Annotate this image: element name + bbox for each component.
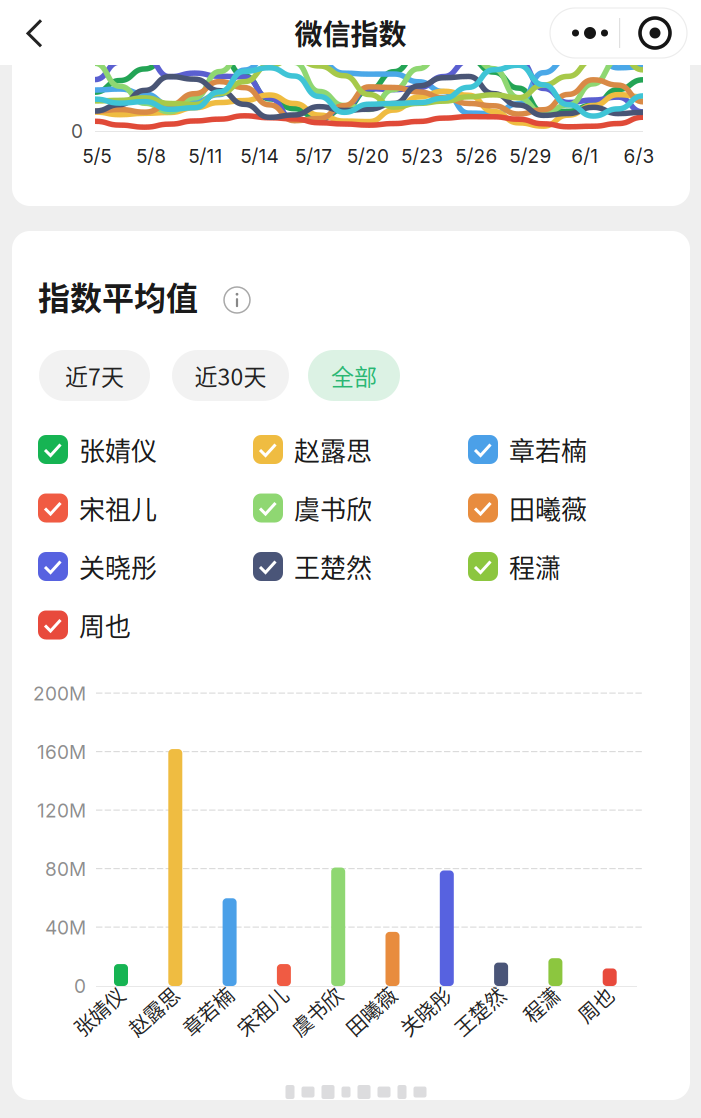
staticText: 周也 <box>584 1011 624 1040</box>
staticText: 5/23 <box>401 144 443 167</box>
button[interactable]: 近30天 <box>172 350 289 401</box>
staticText: 赵露思 <box>129 1011 189 1040</box>
button[interactable]: 全部 <box>308 350 400 401</box>
staticText: 近7天 <box>65 359 124 392</box>
staticText: 周也 <box>79 606 131 644</box>
staticText: 关晓彤 <box>401 1011 461 1040</box>
button[interactable]: 关晓彤 <box>38 552 218 581</box>
staticText: 虞书欣 <box>294 489 372 527</box>
staticText: 王楚然 <box>455 1011 515 1040</box>
staticText: 王楚然 <box>294 548 372 585</box>
staticText: 赵露思 <box>294 431 372 468</box>
staticText: 近30天 <box>194 359 266 392</box>
staticText: 指数平均值 <box>38 273 198 319</box>
staticText: 章若楠 <box>184 1011 244 1040</box>
staticText: 0 <box>74 974 86 997</box>
staticText: 6/3 <box>623 144 654 167</box>
staticText: 田曦薇 <box>509 489 587 527</box>
staticText: 5/17 <box>295 144 332 167</box>
staticText: 5/26 <box>455 144 497 167</box>
staticText: 5/8 <box>136 144 166 167</box>
staticText: 关晓彤 <box>79 548 157 585</box>
staticText: 微信指数 <box>294 12 406 53</box>
staticText: 宋祖儿 <box>79 489 157 527</box>
button[interactable]: Info <box>220 283 254 317</box>
staticText: 6/1 <box>571 144 598 167</box>
staticText: 5/5 <box>82 144 111 167</box>
staticText: 5/20 <box>347 144 389 167</box>
staticText: 160M <box>37 740 86 763</box>
staticText: 200M <box>33 682 86 705</box>
staticText: 张婧仪 <box>75 1011 135 1040</box>
staticText: 程潇 <box>509 548 561 585</box>
staticText: 120M <box>37 799 86 822</box>
staticText: 5/14 <box>241 144 279 167</box>
staticText: 5/29 <box>510 144 552 167</box>
button[interactable]: 宋祖儿 <box>38 493 218 522</box>
staticText: 5/11 <box>188 144 222 167</box>
staticText: 章若楠 <box>509 431 587 468</box>
button[interactable]: 王楚然 <box>253 552 433 581</box>
button[interactable]: 田曦薇 <box>468 493 648 522</box>
staticText: 程潇 <box>529 1011 569 1040</box>
button[interactable]: 章若楠 <box>468 435 648 464</box>
button[interactable]: 虞书欣 <box>253 493 433 522</box>
staticText: 田曦薇 <box>346 1011 406 1040</box>
button[interactable]: More <box>550 8 687 58</box>
button[interactable]: 近7天 <box>39 350 150 401</box>
staticText: 宋祖儿 <box>238 1011 298 1040</box>
staticText: 张婧仪 <box>79 431 157 468</box>
staticText: 80M <box>45 857 86 880</box>
staticText: 40M <box>45 916 86 939</box>
button[interactable]: 赵露思 <box>253 435 433 464</box>
button[interactable]: 程潇 <box>468 552 648 581</box>
staticText: 虞书欣 <box>292 1011 352 1040</box>
button[interactable]: 周也 <box>38 610 218 639</box>
staticText: 全部 <box>331 359 377 392</box>
button[interactable]: 张婧仪 <box>38 435 218 464</box>
staticText: 0 <box>71 119 83 142</box>
button[interactable]: Back <box>0 0 66 66</box>
